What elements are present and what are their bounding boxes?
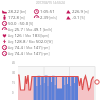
staticText: 45	[12, 61, 15, 65]
staticText: 2017/04/15 14:53:24	[36, 1, 65, 5]
staticText: 30	[12, 71, 15, 75]
staticText: 226.9 [m]	[72, 8, 89, 14]
button[interactable]: metric icon	[2, 38, 53, 44]
other: metric icon	[34, 9, 39, 14]
button[interactable]: metric icon	[34, 14, 66, 20]
staticText: 15	[12, 81, 15, 85]
staticText: Avg 25.7 / Max 49.1 [km/h]	[8, 26, 53, 32]
staticText: 1:05:51	[40, 8, 55, 14]
button[interactable]: metric icon	[2, 8, 34, 14]
button[interactable]: metric icon	[2, 26, 53, 32]
staticText: Avg 74.4 / Max 147 [rpm]	[8, 44, 50, 50]
other: metric icon	[2, 27, 7, 32]
staticText: -0.1 [%]	[72, 14, 85, 20]
other: metric icon	[2, 33, 7, 38]
staticText: Avg 128.8 / Max 502.0 [W]	[8, 38, 53, 44]
button[interactable]: metric icon	[2, 14, 34, 20]
other: metric icon	[2, 21, 7, 26]
staticText: 0	[12, 91, 14, 95]
button[interactable]: metric icon	[66, 8, 98, 14]
other: metric icon	[2, 45, 7, 50]
button[interactable]: metric icon	[2, 44, 50, 50]
other: metric icon	[66, 9, 71, 14]
staticText: 50.0 : 50.0 [%]	[8, 20, 34, 26]
button[interactable]: metric icon	[66, 14, 98, 20]
staticText: Avg 126 / Max 183 [bpm]	[8, 32, 49, 38]
other: metric icon	[2, 39, 7, 44]
staticText: 2.39 [m/s]	[40, 14, 57, 20]
staticText: 172.8 [m]	[8, 14, 25, 20]
staticText: 28.22 [km]	[8, 8, 27, 14]
button[interactable]: metric icon	[2, 50, 50, 56]
other: metric icon	[2, 9, 7, 14]
button[interactable]: metric icon	[2, 20, 34, 26]
other: metric icon	[66, 15, 71, 20]
other: metric icon	[2, 15, 7, 20]
button[interactable]: metric icon	[34, 8, 66, 14]
button[interactable]: metric icon	[2, 32, 49, 38]
other: metric icon	[34, 15, 39, 20]
other: metric icon	[2, 51, 7, 56]
staticText: Avg 74.4 / Max 147 [rpm]	[8, 50, 50, 56]
